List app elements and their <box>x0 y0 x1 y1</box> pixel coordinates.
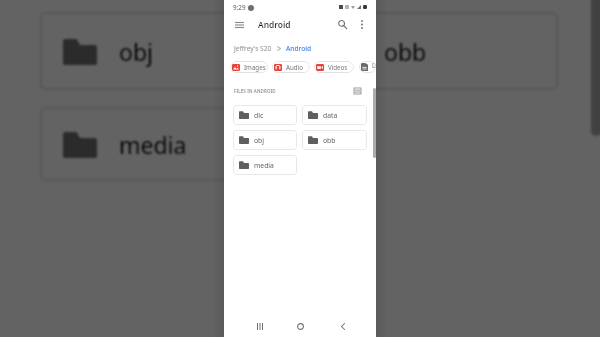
button[interactable]: media <box>233 155 297 175</box>
staticText: Audio <box>286 63 303 71</box>
staticText: data <box>323 111 338 120</box>
button[interactable]: Jeffrey's S20 <box>234 44 272 53</box>
staticText: obj <box>119 36 153 67</box>
staticText: obb <box>384 36 427 67</box>
staticText: 9:29 <box>233 3 246 12</box>
staticText: Docs <box>372 61 376 73</box>
button[interactable]: obb <box>302 130 367 150</box>
staticText: obb <box>323 136 336 145</box>
button[interactable]: obj <box>233 130 297 150</box>
button[interactable]: data <box>302 105 367 125</box>
staticText: dlc <box>254 111 264 120</box>
button[interactable]: Change view <box>352 86 362 96</box>
button[interactable]: Home <box>292 318 308 334</box>
staticText: Android <box>258 19 291 30</box>
button[interactable]: Audio <box>272 61 310 73</box>
button[interactable]: Videos <box>314 61 354 73</box>
button[interactable]: Recent apps <box>252 318 268 334</box>
staticText: FILES IN ANDROID <box>234 88 276 94</box>
button[interactable]: Docs <box>359 61 376 73</box>
button[interactable]: Navigation menu <box>231 16 247 32</box>
staticText: obj <box>254 136 265 145</box>
button[interactable]: Images <box>230 61 268 73</box>
staticText: media <box>119 129 187 160</box>
button[interactable]: More options <box>354 16 370 32</box>
button[interactable]: Search <box>334 16 350 32</box>
button[interactable]: dlc <box>233 105 297 125</box>
button[interactable]: Android <box>286 44 312 53</box>
staticText: media <box>254 161 274 170</box>
staticText: Images <box>244 63 266 71</box>
staticText: Videos <box>328 63 348 71</box>
button[interactable]: Back <box>335 318 351 334</box>
